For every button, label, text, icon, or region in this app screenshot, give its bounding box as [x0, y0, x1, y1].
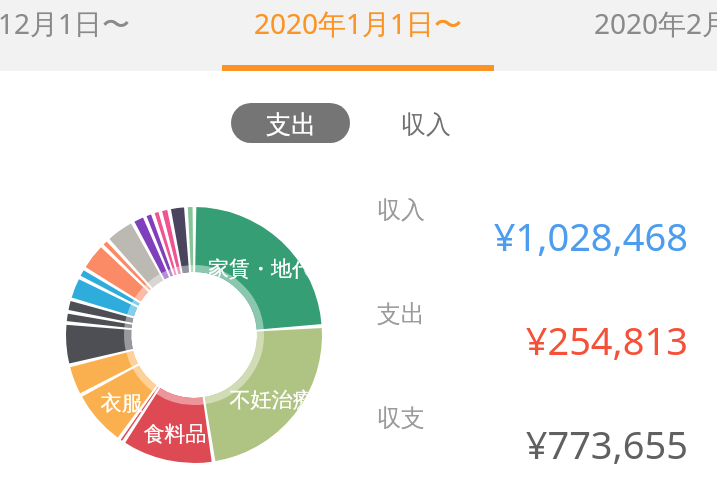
- button[interactable]: 収入: [386, 103, 466, 143]
- staticText: ¥1,028,468: [370, 210, 688, 262]
- button[interactable]: 2020年2月1日〜: [528, 0, 717, 65]
- button[interactable]: 支出: [377, 299, 425, 329]
- staticText: 収入: [401, 109, 451, 140]
- staticText: 支出: [266, 109, 316, 140]
- staticText: 支出: [377, 299, 425, 329]
- staticText: ¥773,655: [370, 418, 688, 470]
- staticText: 2020年2月1日〜: [594, 4, 717, 42]
- button[interactable]: 2020年1月1日〜: [188, 0, 528, 65]
- staticText: ¥254,813: [370, 314, 688, 366]
- button[interactable]: 収支: [377, 403, 425, 433]
- button[interactable]: 支出: [231, 103, 350, 143]
- staticText: 収入: [377, 195, 425, 225]
- staticText: 2020年1月1日〜: [254, 4, 463, 42]
- staticText: 2019年12月1日〜: [0, 4, 131, 42]
- button[interactable]: 収入: [377, 195, 425, 225]
- staticText: 収支: [377, 403, 425, 433]
- button[interactable]: 2019年12月1日〜: [0, 0, 188, 65]
